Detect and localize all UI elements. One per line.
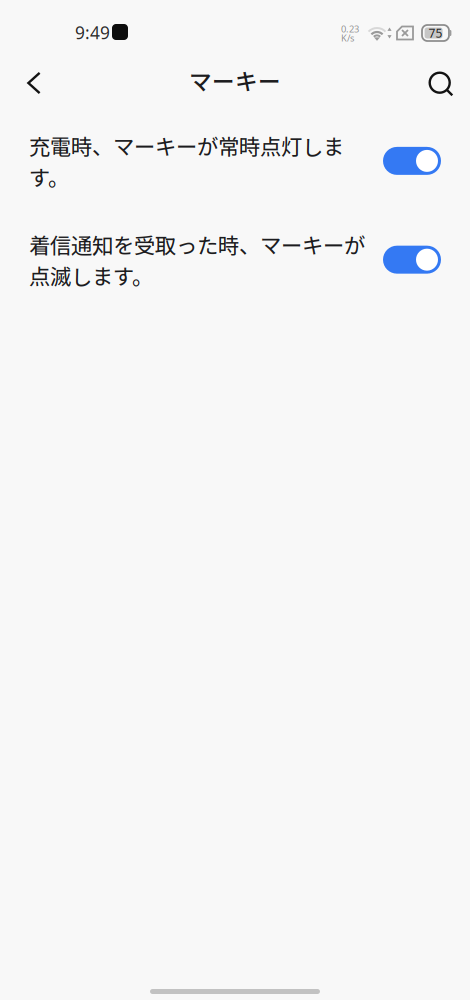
button[interactable]: 着信通知を受取った時、マーキーが点滅します。 <box>0 192 470 291</box>
button[interactable]: Search <box>419 58 463 102</box>
staticText: 75 <box>428 25 442 41</box>
staticText: K/s <box>341 32 354 44</box>
staticText: 9:49 <box>75 21 110 44</box>
button[interactable]: Back <box>12 58 56 102</box>
button[interactable]: 充電時、マーキーが常時点灯します。 <box>0 104 470 192</box>
staticText: 0.23 <box>341 23 359 35</box>
staticText: 充電時、マーキーが常時点灯します。 <box>29 130 344 192</box>
staticText: マーキー <box>189 64 281 96</box>
staticText: 着信通知を受取った時、マーキーが点滅します。 <box>29 229 365 291</box>
